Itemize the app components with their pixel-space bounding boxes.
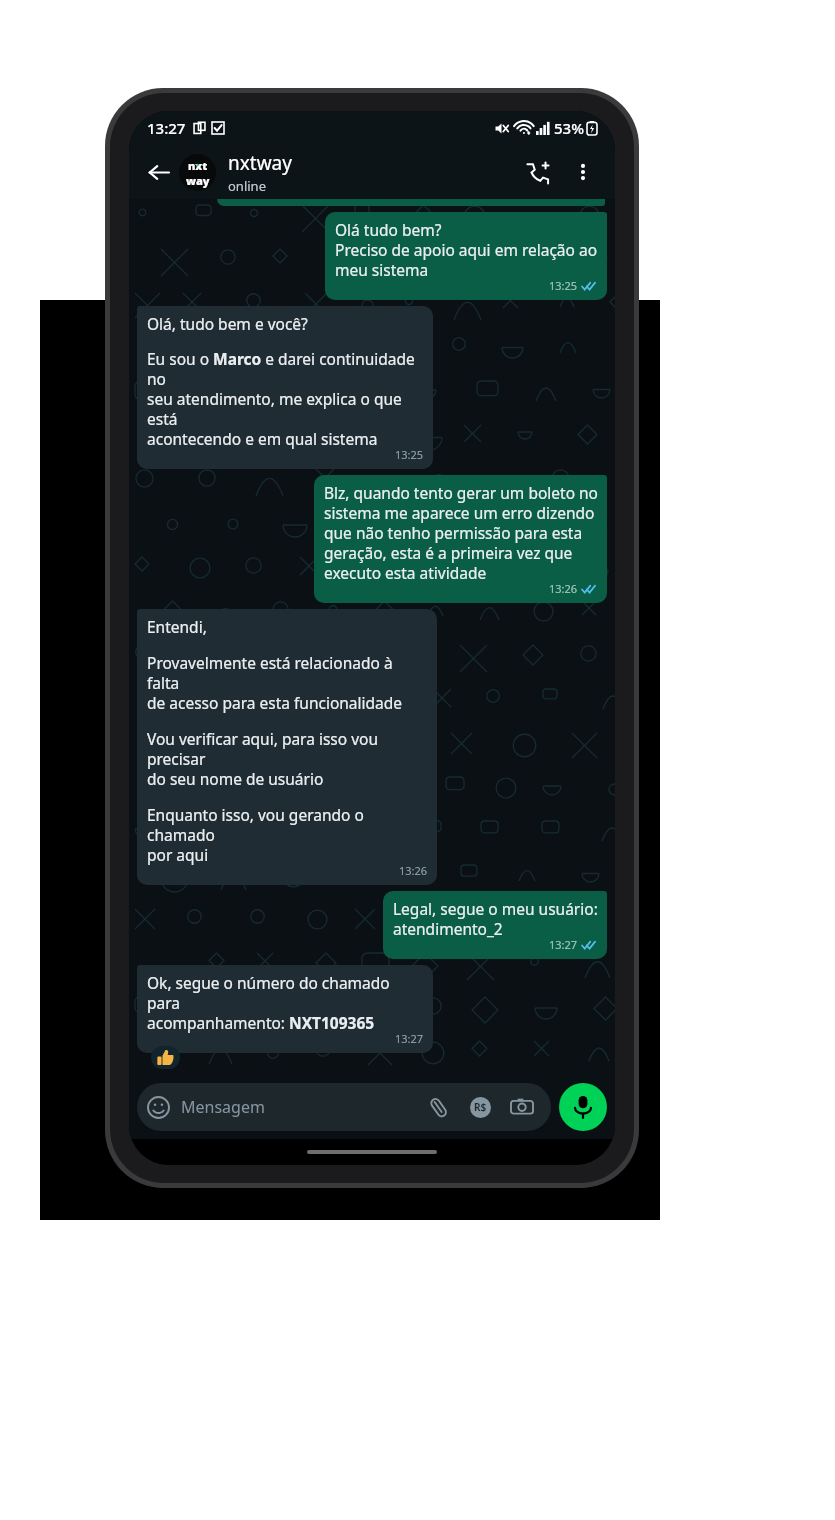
staticText: way	[186, 173, 210, 188]
button[interactable]: Send payment	[465, 1092, 495, 1122]
staticText: 53%	[554, 118, 584, 138]
staticText: R$	[474, 1100, 487, 1114]
staticText: Mensagem	[181, 1096, 265, 1118]
staticText: nxt	[188, 158, 208, 173]
staticText: Legal, segue o meu usuário: atendimento_…	[393, 898, 598, 939]
staticText: online	[228, 177, 266, 195]
staticText: Blz, quando tento gerar um boleto no sis…	[324, 482, 598, 583]
staticText: 13:26	[399, 863, 428, 878]
button[interactable]: Back	[139, 153, 177, 191]
staticText: Enquanto isso, vou gerando o chamado por…	[147, 804, 428, 865]
button[interactable]: Blz, quando tento gerar um boleto no sis…	[314, 475, 607, 603]
staticText: 13:27	[549, 937, 578, 952]
staticText: Entendi,	[147, 616, 207, 637]
button[interactable]: Camera	[507, 1092, 537, 1122]
button[interactable]: Mensagem	[137, 1083, 551, 1131]
staticText: Eu sou o Marco e darei continuidade no s…	[147, 348, 424, 449]
button[interactable]	[157, 1049, 174, 1066]
staticText: Ok, segue o número do chamado para acomp…	[147, 972, 424, 1033]
staticText: 13:25	[395, 447, 424, 462]
button[interactable]: Ok, segue o número do chamado para acomp…	[137, 965, 433, 1053]
staticText: 13:26	[549, 581, 578, 596]
button[interactable]: Olá, tudo bem e você?	[137, 306, 433, 469]
staticText: 13:25	[549, 278, 578, 293]
button[interactable]: Entendi,	[137, 609, 437, 885]
staticText: Vou verificar aqui, para isso vou precis…	[147, 728, 428, 789]
button[interactable]: Profile photo	[179, 154, 216, 191]
button[interactable]: Attach	[423, 1092, 453, 1122]
button[interactable]: Add call	[517, 152, 557, 192]
staticText: Olá, tudo bem e você?	[147, 313, 308, 334]
button[interactable]: Legal, segue o meu usuário: atendimento_…	[383, 891, 607, 959]
button[interactable]: More options	[565, 154, 601, 190]
staticText: Olá tudo bem? Preciso de apoio aqui em r…	[335, 219, 598, 280]
button[interactable]: nxtway	[228, 150, 517, 195]
staticText: Provavelmente está relacionado à falta d…	[147, 652, 428, 713]
staticText: nxtway	[228, 150, 292, 176]
staticText: 13:27	[395, 1031, 424, 1046]
staticText: 13:27	[147, 118, 186, 138]
button[interactable]: Olá tudo bem? Preciso de apoio aqui em r…	[325, 212, 607, 300]
button[interactable]: Voice message	[559, 1083, 607, 1131]
